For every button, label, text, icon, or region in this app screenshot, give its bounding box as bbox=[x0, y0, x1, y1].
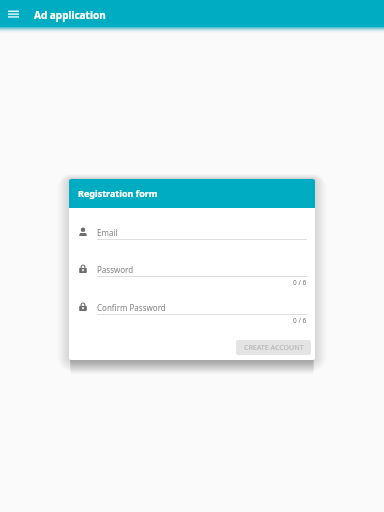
staticText: Email bbox=[97, 227, 118, 238]
staticText: 0 / 6 bbox=[293, 278, 307, 287]
button[interactable] bbox=[76, 225, 309, 243]
staticText: Ad application bbox=[34, 8, 106, 22]
staticText: CREATE ACCOUNT bbox=[244, 343, 304, 353]
staticText: 0 / 6 bbox=[293, 316, 307, 325]
staticText: Password bbox=[97, 264, 134, 275]
button[interactable]: Open navigation menu bbox=[5, 6, 21, 22]
button[interactable]: CREATE ACCOUNT bbox=[236, 340, 311, 355]
button[interactable] bbox=[76, 262, 309, 280]
staticText: Registration form bbox=[78, 187, 158, 199]
staticText: Confirm Password bbox=[97, 302, 166, 313]
button[interactable] bbox=[76, 300, 309, 318]
